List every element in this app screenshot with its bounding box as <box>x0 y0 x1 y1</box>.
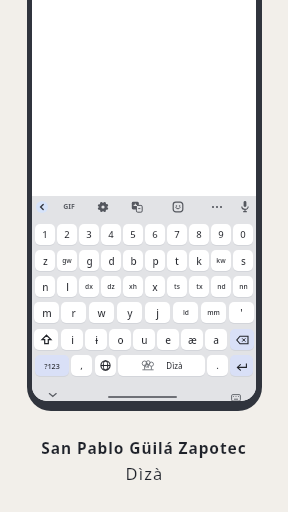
button[interactable]: r <box>61 302 86 323</box>
button[interactable] <box>131 201 143 213</box>
button[interactable]: n <box>35 276 55 297</box>
button[interactable] <box>230 355 253 376</box>
staticText: m <box>42 306 52 320</box>
button[interactable] <box>211 201 223 213</box>
button[interactable]: m <box>34 302 59 323</box>
staticText: g <box>86 254 93 268</box>
button[interactable]: d <box>101 250 121 271</box>
button[interactable] <box>231 394 241 401</box>
button[interactable]: Dìzà <box>118 355 205 376</box>
button[interactable]: 9 <box>211 224 231 245</box>
staticText: Dìzà <box>166 360 183 371</box>
button[interactable]: 5 <box>123 224 143 245</box>
button[interactable]: 6 <box>145 224 165 245</box>
button[interactable]: nd <box>211 276 231 297</box>
button[interactable]: ts <box>167 276 187 297</box>
button[interactable]: ' <box>229 302 254 323</box>
button[interactable]: æ <box>181 329 203 350</box>
staticText: 8 <box>196 228 202 241</box>
button[interactable]: w <box>89 302 114 323</box>
staticText: ' <box>240 306 243 320</box>
staticText: San Pablo Güilá Zapotec <box>41 437 247 458</box>
staticText: 1 <box>42 228 48 241</box>
staticText: xh <box>129 282 137 291</box>
button[interactable]: tx <box>189 276 209 297</box>
button[interactable]: nn <box>233 276 253 297</box>
button[interactable]: . <box>207 355 228 376</box>
button[interactable] <box>239 200 251 213</box>
staticText: dx <box>85 282 93 291</box>
staticText: kw <box>216 256 226 265</box>
button[interactable]: dx <box>79 276 99 297</box>
button[interactable]: e <box>157 329 179 350</box>
button[interactable]: ld <box>173 302 198 323</box>
button[interactable] <box>47 392 59 400</box>
staticText: o <box>117 333 124 347</box>
button[interactable]: , <box>71 355 92 376</box>
staticText: 9 <box>218 228 224 241</box>
button[interactable] <box>97 201 109 213</box>
button[interactable]: p <box>145 250 165 271</box>
staticText: a <box>213 333 219 347</box>
button[interactable]: xh <box>123 276 143 297</box>
staticText: s <box>241 254 246 268</box>
staticText: ld <box>183 308 189 317</box>
button[interactable]: dz <box>101 276 121 297</box>
staticText: dz <box>107 282 115 291</box>
button[interactable]: mm <box>201 302 226 323</box>
staticText: tx <box>196 282 203 291</box>
button[interactable]: y <box>117 302 142 323</box>
staticText: b <box>130 254 137 268</box>
staticText: gw <box>62 256 72 265</box>
button[interactable] <box>36 201 48 213</box>
button[interactable]: ?123 <box>35 355 69 376</box>
button[interactable]: i <box>61 329 83 350</box>
staticText: y <box>127 306 133 320</box>
staticText: w <box>97 306 106 320</box>
staticText: k <box>196 254 202 268</box>
staticText: mm <box>207 308 220 317</box>
button[interactable]: a <box>205 329 227 350</box>
button[interactable]: x <box>145 276 165 297</box>
button[interactable]: j <box>145 302 170 323</box>
button[interactable]: GIF <box>60 201 78 213</box>
staticText: 4 <box>108 228 114 241</box>
button[interactable]: s <box>233 250 253 271</box>
staticText: x <box>152 280 158 294</box>
button[interactable]: t <box>167 250 187 271</box>
button[interactable]: g <box>79 250 99 271</box>
button[interactable]: l <box>57 276 77 297</box>
button[interactable]: u <box>133 329 155 350</box>
staticText: i <box>71 333 74 347</box>
button[interactable]: 4 <box>101 224 121 245</box>
staticText: p <box>152 254 159 268</box>
staticText: . <box>216 359 219 372</box>
button[interactable] <box>172 201 184 213</box>
staticText: r <box>71 306 76 320</box>
staticText: z <box>43 254 48 268</box>
staticText: e <box>165 333 171 347</box>
staticText: 5 <box>130 228 136 241</box>
button[interactable]: ɨ <box>85 329 107 350</box>
button[interactable]: 1 <box>35 224 55 245</box>
staticText: d <box>108 254 115 268</box>
button[interactable] <box>34 329 58 350</box>
button[interactable]: 2 <box>57 224 77 245</box>
staticText: ?123 <box>44 361 60 371</box>
staticText: Dìzà <box>125 462 164 484</box>
button[interactable]: 8 <box>189 224 209 245</box>
button[interactable]: 7 <box>167 224 187 245</box>
staticText: j <box>156 306 159 320</box>
button[interactable]: 0 <box>233 224 253 245</box>
staticText: n <box>42 280 49 294</box>
button[interactable]: gw <box>57 250 77 271</box>
staticText: GIF <box>63 202 75 212</box>
button[interactable] <box>230 329 254 350</box>
button[interactable]: 3 <box>79 224 99 245</box>
button[interactable]: kw <box>211 250 231 271</box>
button[interactable]: o <box>109 329 131 350</box>
button[interactable]: z <box>35 250 55 271</box>
button[interactable]: b <box>123 250 143 271</box>
button[interactable] <box>95 355 116 376</box>
button[interactable]: k <box>189 250 209 271</box>
